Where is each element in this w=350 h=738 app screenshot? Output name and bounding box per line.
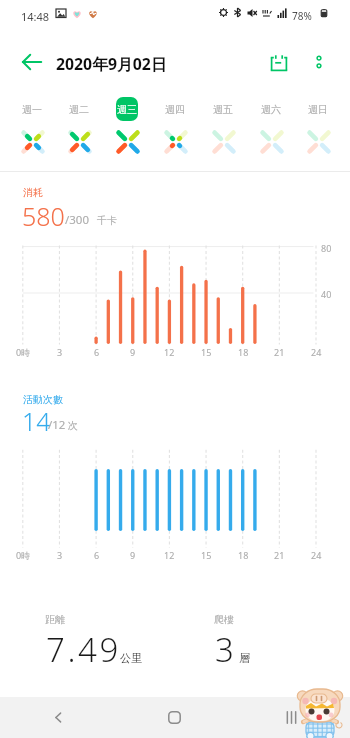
staticText: 6 (94, 549, 100, 561)
staticText: 80 (321, 242, 332, 254)
staticText: 6 (94, 346, 100, 358)
staticText: 0時 (16, 549, 31, 561)
button[interactable]: Back (10, 40, 54, 84)
staticText: 580 (22, 199, 65, 233)
staticText: 0時 (16, 346, 31, 358)
staticText: 活動次數 (23, 393, 63, 406)
button[interactable]: 週六 (247, 90, 295, 156)
staticText: 21 (274, 346, 285, 358)
staticText: 18 (238, 346, 249, 358)
staticText: 週三 (117, 103, 137, 116)
button[interactable]: 週四 (151, 90, 199, 156)
staticText: /12 (48, 417, 66, 433)
staticText: 距離 (45, 613, 65, 626)
staticText: 3 (57, 549, 63, 561)
button[interactable]: 距離 (40, 605, 200, 673)
staticText: 週一 (22, 103, 42, 116)
staticText: 15 (201, 549, 212, 561)
staticText: 週二 (69, 103, 89, 116)
staticText: 15 (201, 346, 212, 358)
staticText: 2020年9月02日 (56, 53, 167, 75)
staticText: 公里 (120, 651, 142, 665)
staticText: 週四 (165, 103, 185, 116)
staticText: 21 (274, 549, 285, 561)
staticText: 9 (130, 346, 136, 358)
button[interactable]: More options (297, 40, 341, 84)
staticText: 3 (215, 627, 237, 672)
staticText: 層 (239, 651, 250, 665)
staticText: 14:48 (21, 9, 50, 24)
staticText: 次 (68, 419, 78, 432)
staticText: 12 (164, 346, 175, 358)
button[interactable]: Back (0, 697, 116, 738)
staticText: 千卡 (97, 214, 117, 227)
button[interactable]: Recent apps (233, 697, 350, 738)
staticText: /300 (65, 212, 90, 228)
button[interactable]: 週日 (294, 90, 342, 156)
staticText: 24 (311, 346, 322, 358)
button[interactable]: 週三 (103, 90, 151, 156)
button[interactable]: 週五 (199, 90, 247, 156)
button[interactable]: 週一 (8, 90, 56, 156)
button[interactable]: 爬樓 (209, 605, 319, 673)
staticText: 78% (292, 9, 312, 23)
staticText: 18 (238, 549, 249, 561)
staticText: 爬樓 (214, 613, 234, 626)
staticText: 14 (22, 404, 51, 438)
staticText: 週五 (213, 103, 233, 116)
staticText: 週六 (261, 103, 281, 116)
button[interactable]: Home (116, 697, 233, 738)
button[interactable]: 週二 (55, 90, 103, 156)
staticText: 7.49 (46, 627, 121, 672)
staticText: 週日 (308, 103, 328, 116)
staticText: 24 (311, 549, 322, 561)
staticText: 40 (321, 288, 332, 300)
button[interactable]: Calendar (257, 42, 301, 86)
staticText: 12 (164, 549, 175, 561)
staticText: 9 (130, 549, 136, 561)
staticText: 3 (57, 346, 63, 358)
staticText: 消耗 (23, 186, 43, 199)
